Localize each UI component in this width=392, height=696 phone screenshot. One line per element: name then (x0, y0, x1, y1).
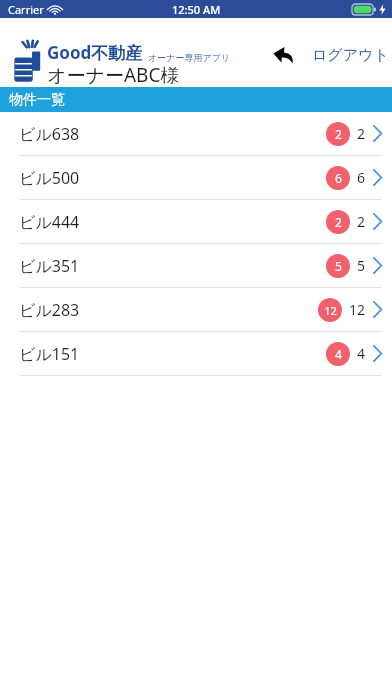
staticText: ログアウト (312, 46, 389, 65)
button[interactable]: ログアウト (308, 40, 392, 70)
staticText: 2 (357, 124, 366, 143)
staticText: 12 (324, 303, 337, 318)
staticText: 6 (357, 168, 366, 187)
button[interactable]: ビル283 (0, 288, 392, 331)
staticText: オーナーABC様 (47, 62, 180, 88)
button[interactable]: 戻る (266, 40, 302, 70)
staticText: 12 (349, 300, 366, 319)
staticText: Good不動産 (47, 41, 143, 64)
staticText: 2 (357, 212, 366, 231)
staticText: ビル151 (19, 343, 80, 365)
button[interactable]: ビル151 (0, 332, 392, 375)
button[interactable]: ビル351 (0, 244, 392, 287)
staticText: 6 (335, 170, 342, 186)
button[interactable]: ビル500 (0, 156, 392, 199)
staticText: 5 (357, 256, 366, 275)
staticText: 2 (335, 214, 342, 230)
staticText: 4 (357, 344, 366, 363)
staticText: ビル351 (19, 255, 80, 277)
staticText: 12:50 AM (172, 2, 221, 17)
staticText: 物件一覧 (9, 91, 65, 109)
staticText: ビル500 (19, 167, 80, 189)
staticText: ビル283 (19, 299, 80, 321)
staticText: Carrier (8, 2, 44, 17)
button[interactable]: ビル638 (0, 112, 392, 155)
staticText: 5 (335, 258, 342, 274)
staticText: 4 (335, 346, 342, 362)
staticText: オーナー専用アプリ (148, 52, 231, 63)
staticText: ビル444 (19, 211, 80, 233)
staticText: 2 (335, 126, 342, 142)
button[interactable]: ビル444 (0, 200, 392, 243)
staticText: ビル638 (19, 123, 80, 145)
